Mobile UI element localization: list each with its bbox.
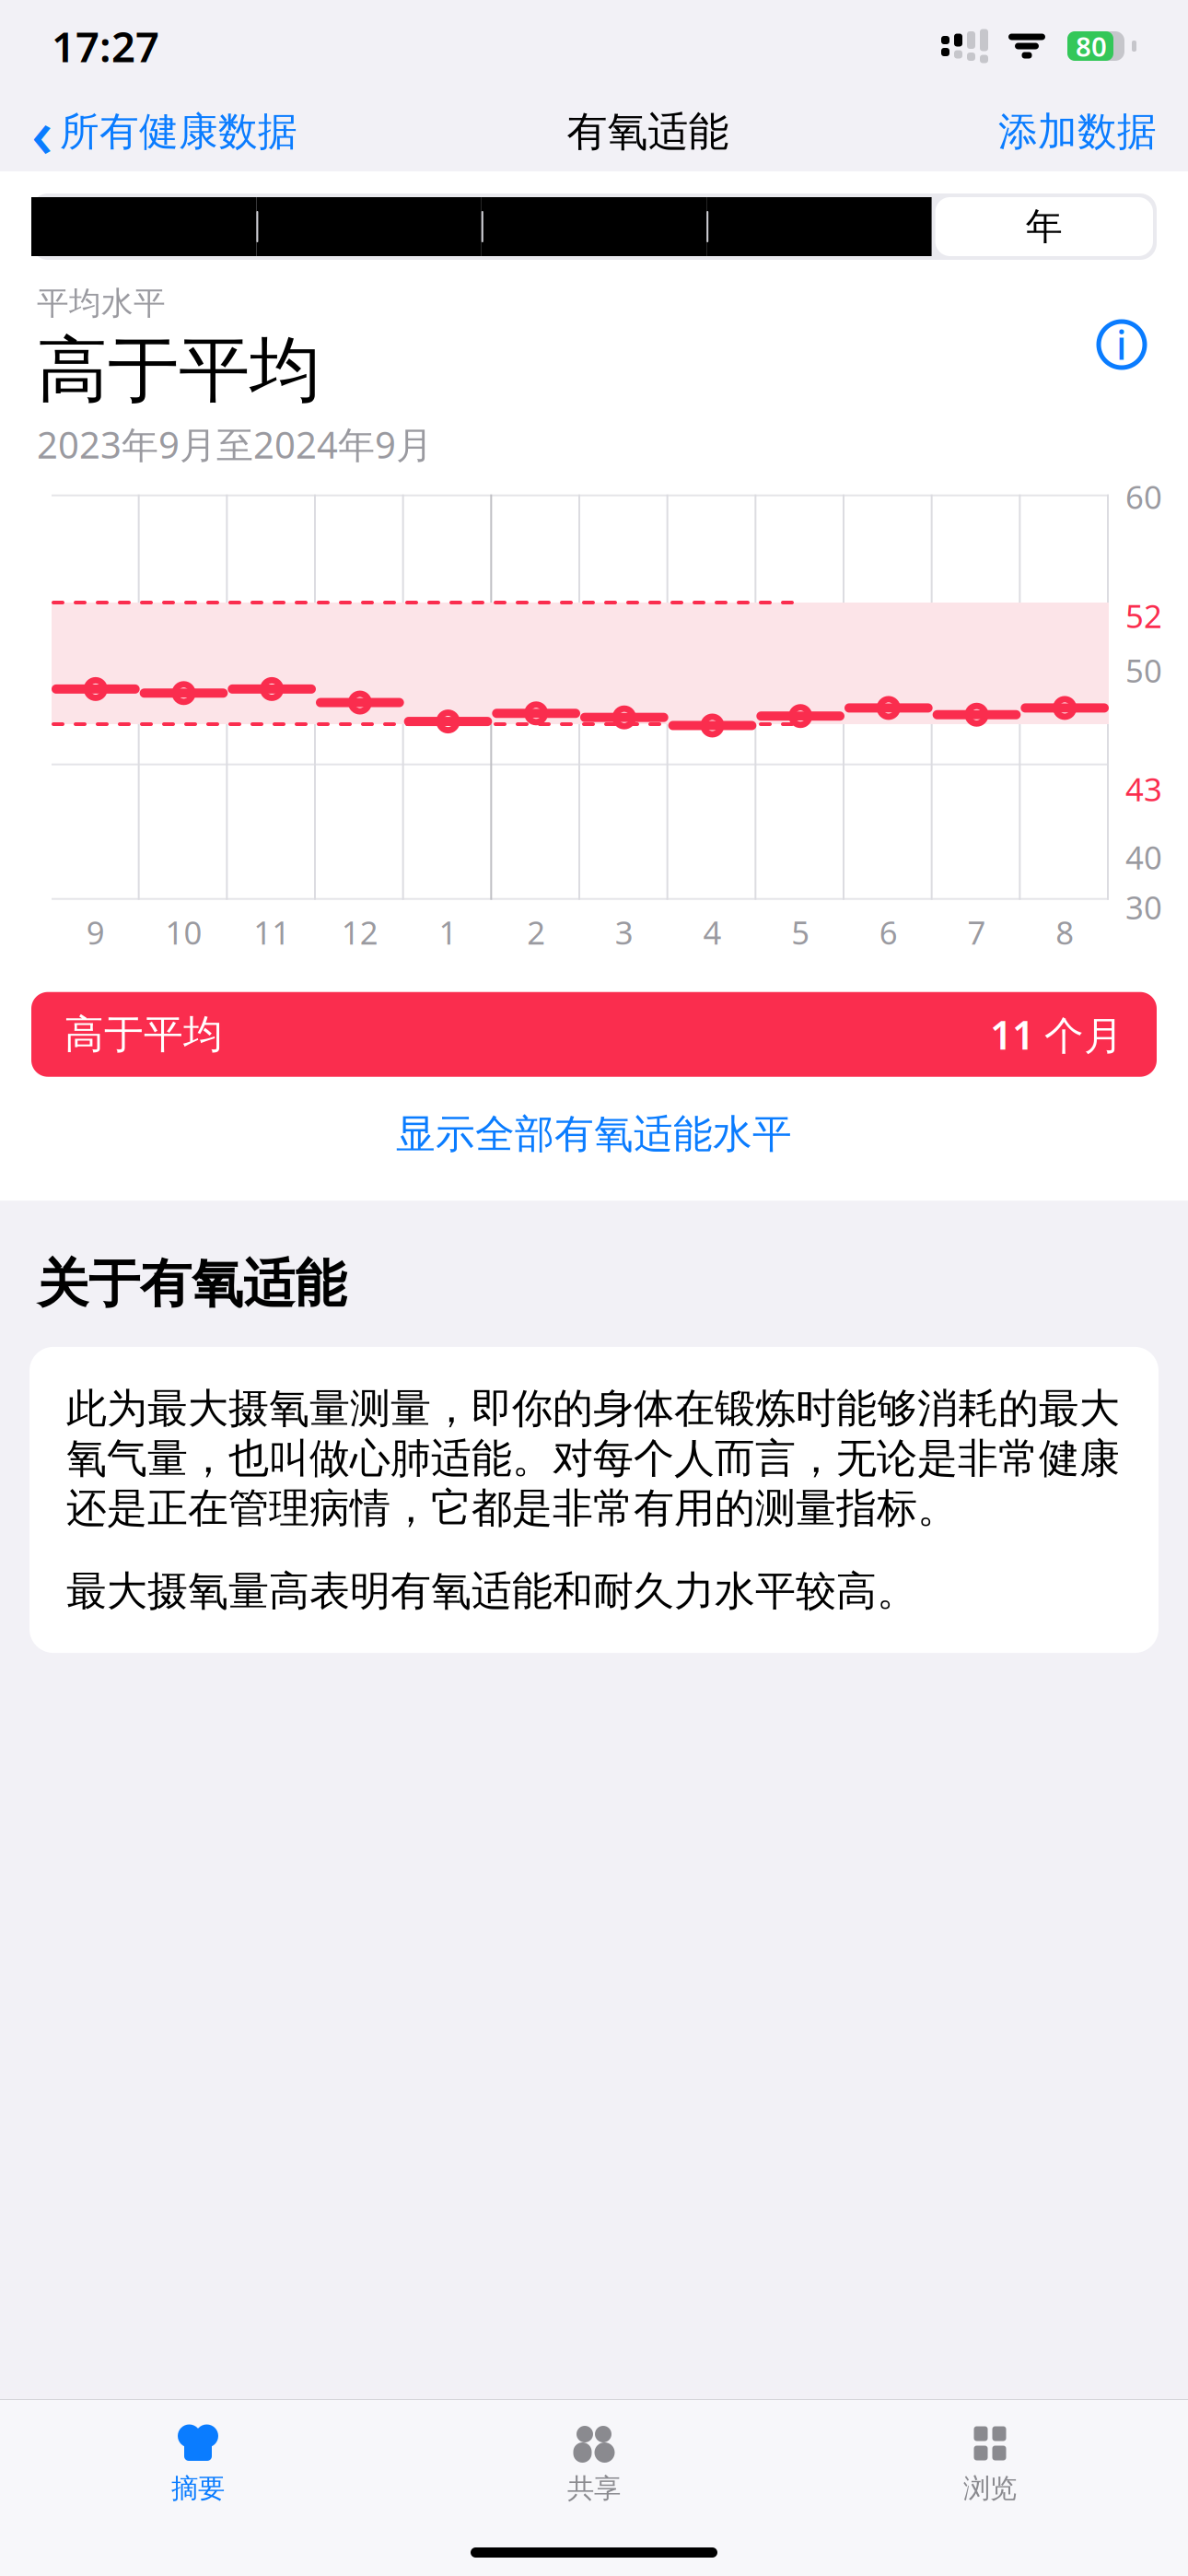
staticText: 8 — [1056, 911, 1074, 953]
staticText: 5 — [791, 911, 810, 953]
button[interactable]: 添加数据 — [998, 102, 1157, 161]
button[interactable]: 高于平均 — [31, 992, 1157, 1077]
staticText: 显示全部有氧适能水平 — [396, 1110, 792, 1158]
staticText: 43 — [1125, 768, 1162, 810]
staticText: 最大摄氧量高表明有氧适能和耐久力水平较高。 — [66, 1566, 917, 1616]
staticText: 关于有氧适能 — [37, 1252, 346, 1316]
staticText: 有氧适能 — [567, 107, 729, 157]
button[interactable]: 摘要 — [0, 2413, 396, 2516]
button[interactable]: 关于此数据 — [1092, 315, 1151, 374]
staticText: 12 — [341, 911, 378, 953]
staticText: 10 — [165, 911, 202, 953]
staticText: 2 — [527, 911, 545, 953]
staticText: 11 — [253, 911, 290, 953]
staticText: 高于平均 — [64, 1010, 223, 1059]
button[interactable]: 周 — [256, 197, 481, 256]
button[interactable]: 年 — [932, 197, 1157, 256]
button[interactable]: 显示全部有氧适能水平 — [0, 1099, 1188, 1169]
staticText: 浏览 — [963, 2472, 1017, 2505]
staticText: 4 — [703, 911, 722, 953]
staticText: 17:27 — [52, 18, 159, 74]
button[interactable]: ‹ — [31, 82, 297, 181]
button[interactable]: 浏览 — [792, 2413, 1188, 2516]
staticText: 52 — [1125, 595, 1162, 637]
staticText: 所有健康数据 — [60, 108, 297, 156]
staticText: 摘要 — [171, 2472, 225, 2505]
staticText: 50 — [1125, 649, 1162, 692]
staticText: ‹ — [31, 88, 52, 176]
staticText: 此为最大摄氧量测量，即你的身体在锻炼时能够消耗的最大氧气量，也叫做心肺适能。对每… — [66, 1384, 1120, 1533]
staticText: i — [1116, 318, 1127, 371]
button[interactable]: 月 — [481, 197, 707, 256]
staticText: 7 — [967, 911, 986, 953]
staticText: 9 — [86, 911, 105, 953]
staticText: 30 — [1125, 886, 1162, 928]
staticText: 6 — [879, 911, 898, 953]
staticText: 添加数据 — [998, 108, 1157, 156]
staticText: 年 — [1026, 204, 1063, 249]
staticText: 80 — [1076, 28, 1107, 64]
button[interactable]: 日 — [31, 197, 256, 256]
staticText: 3 — [615, 911, 633, 953]
button[interactable]: 6个月 — [707, 197, 932, 256]
staticText: 2023年9月至2024年9月 — [37, 420, 433, 469]
staticText: 11 个月 — [990, 1008, 1124, 1061]
staticText: 平均水平 — [37, 284, 166, 323]
staticText: 1 — [439, 911, 457, 953]
staticText: 60 — [1125, 475, 1162, 518]
staticText: 高于平均 — [37, 327, 320, 414]
button[interactable]: 共享 — [396, 2413, 792, 2516]
staticText: 40 — [1125, 836, 1162, 878]
staticText: 共享 — [567, 2472, 621, 2505]
